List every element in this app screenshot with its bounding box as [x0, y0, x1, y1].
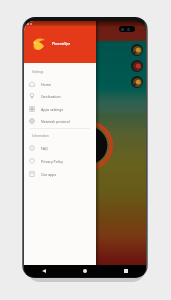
- staticText: Apps settings: [41, 107, 64, 112]
- button[interactable]: Privacy Policy: [24, 155, 96, 167]
- button[interactable]: Home: [64, 265, 105, 277]
- button[interactable]: Server location: [131, 76, 143, 88]
- button[interactable]: Server location: [131, 44, 143, 56]
- button[interactable]: Geolocation: [24, 90, 96, 102]
- button[interactable]: Our apps: [24, 168, 96, 180]
- staticText: FAQ: [41, 146, 48, 151]
- staticText: Our apps: [41, 172, 57, 177]
- staticText: Information: [32, 134, 49, 138]
- staticText: PhoenixVpn: [52, 42, 71, 46]
- button[interactable]: Network protocol: [24, 115, 96, 127]
- button[interactable]: Apps settings: [24, 103, 96, 115]
- staticText: Geolocation: [41, 94, 61, 99]
- staticText: Privacy Policy: [41, 159, 64, 164]
- staticText: Settings: [32, 70, 44, 74]
- button[interactable]: Server location: [131, 60, 143, 72]
- button[interactable]: Home: [24, 78, 96, 90]
- staticText: Network protocol: [41, 119, 70, 124]
- button[interactable]: FAQ: [24, 142, 96, 154]
- button[interactable]: Back: [24, 265, 64, 277]
- staticText: Home: [41, 82, 51, 87]
- button[interactable]: Recent apps: [105, 265, 146, 277]
